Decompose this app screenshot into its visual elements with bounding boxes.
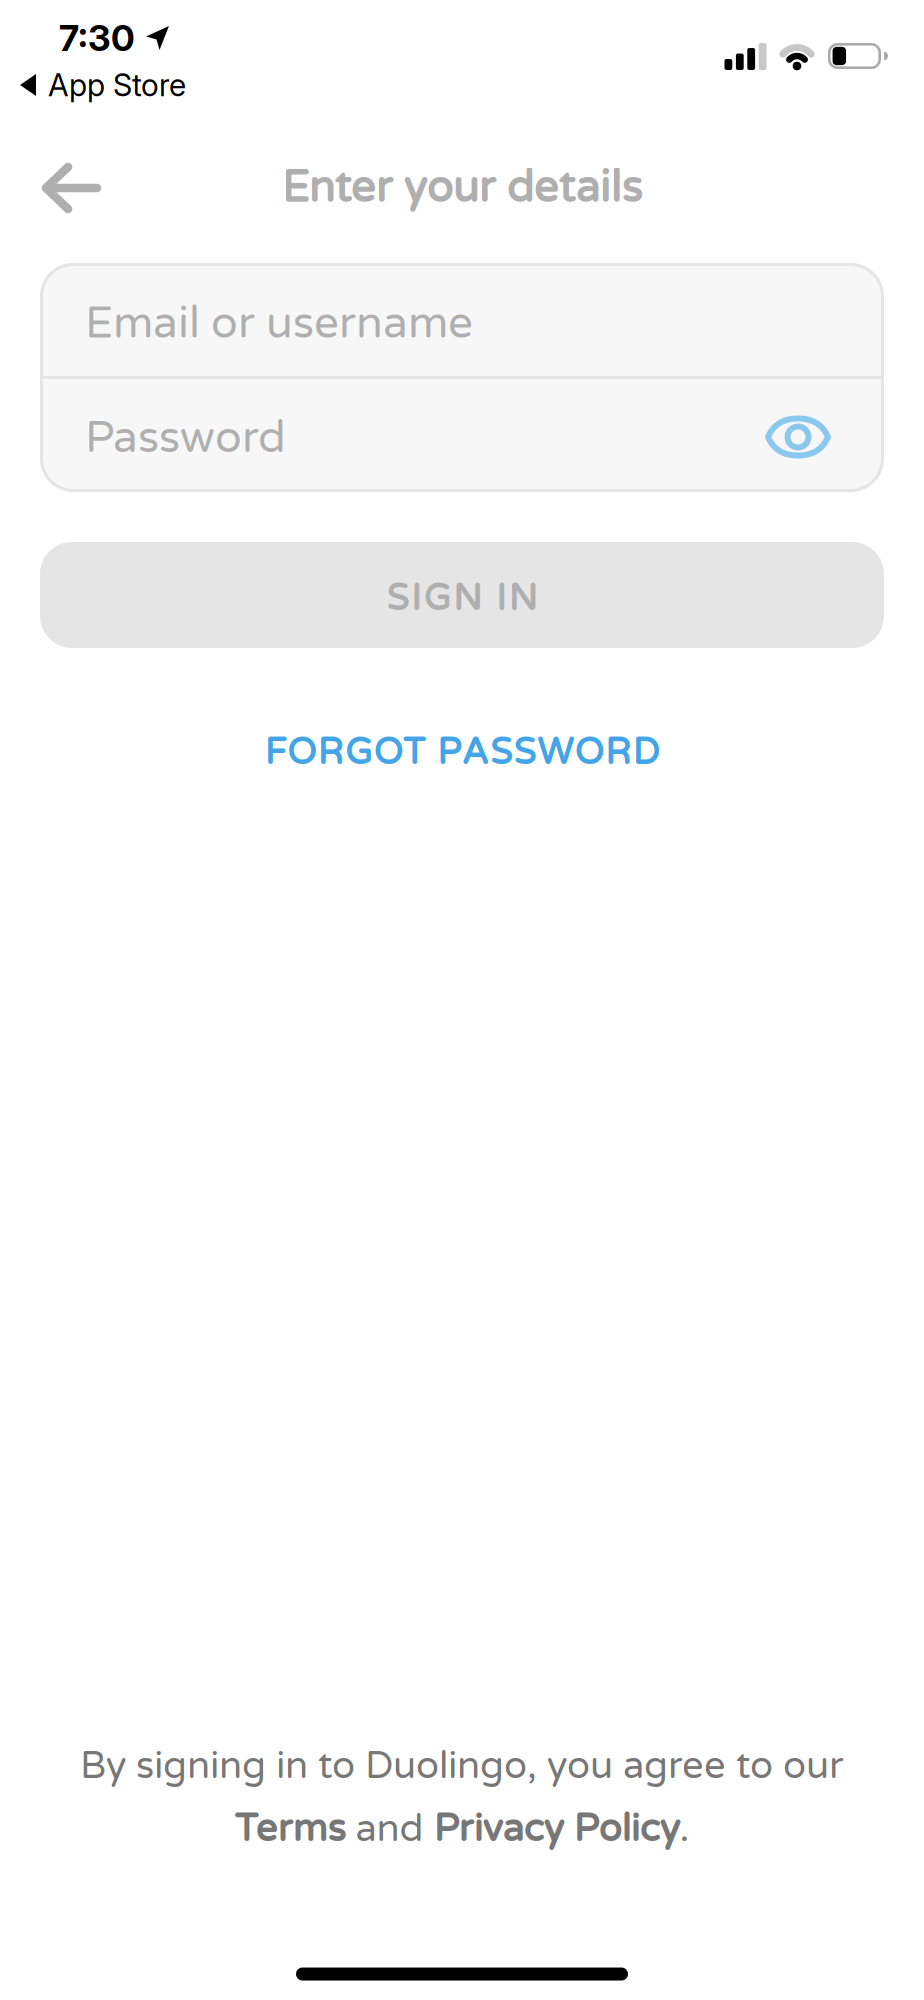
staticText: Terms [234, 1806, 345, 1852]
staticText: App Store [48, 66, 186, 103]
staticText: Password [85, 411, 286, 464]
button[interactable]: Email or username [40, 267, 884, 380]
staticText: 7:30 [59, 16, 135, 60]
staticText: SIGN IN [386, 577, 537, 620]
staticText: FORGOT PASSWORD [264, 731, 659, 774]
button[interactable]: Terms [234, 1806, 345, 1852]
button[interactable]: Back to App Store [20, 66, 186, 103]
button[interactable]: SIGN IN [40, 542, 884, 648]
staticText: Privacy Policy [433, 1806, 679, 1852]
button[interactable]: Back [41, 163, 101, 213]
staticText: Enter your details [281, 162, 642, 214]
button[interactable]: FORGOT PASSWORD [264, 731, 659, 774]
staticText: Email or username [85, 297, 473, 350]
button[interactable]: Show password [766, 418, 830, 456]
button[interactable]: Password [40, 381, 884, 494]
staticText: . [679, 1806, 689, 1852]
staticText: By signing in to Duolingo, you agree to … [80, 1743, 844, 1789]
staticText: and [345, 1806, 433, 1852]
button[interactable]: Privacy Policy [433, 1806, 679, 1852]
